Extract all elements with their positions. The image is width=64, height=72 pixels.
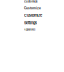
staticText: Settings <box>24 21 37 25</box>
staticText: Appearance <box>24 28 35 31</box>
staticText: Customize <box>24 0 38 3</box>
staticText: Customize <box>24 6 41 10</box>
staticText: Customize <box>24 13 42 18</box>
